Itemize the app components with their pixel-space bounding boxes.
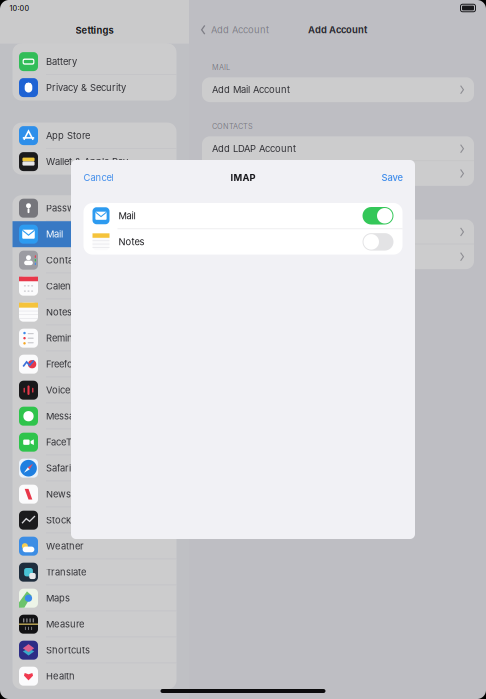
staticText: IMAP — [230, 172, 255, 183]
button[interactable]: Add Subscribed Calendar — [202, 244, 474, 269]
staticText: Measure — [46, 619, 84, 630]
button[interactable]: Privacy & Security — [12, 75, 176, 101]
staticText: Privacy & Security — [46, 82, 126, 93]
button[interactable]: Passwords — [12, 195, 176, 221]
button[interactable]: Battery — [12, 49, 176, 75]
staticText: Cancel — [83, 172, 113, 183]
staticText: Notes — [118, 236, 144, 247]
staticText: Mail — [46, 229, 63, 240]
button[interactable]: Mail — [83, 203, 402, 228]
button[interactable]: Calendar — [12, 273, 176, 299]
staticText: Health — [46, 671, 75, 682]
button[interactable]: Mail — [12, 221, 176, 247]
staticText: Safari — [46, 463, 71, 474]
button[interactable]: App Store — [12, 123, 176, 149]
staticText: Add Subscribed Calendar — [212, 251, 327, 262]
button[interactable]: Safari — [12, 455, 176, 481]
staticText: Maps — [46, 593, 70, 604]
button[interactable]: Add LDAP Account — [202, 136, 474, 161]
button[interactable]: Reminders — [12, 325, 176, 351]
button[interactable]: Add CardDAV Account — [202, 161, 474, 186]
staticText: Add CalDAV Account — [212, 226, 305, 238]
staticText: Weather — [46, 541, 84, 552]
staticText: App Store — [46, 130, 90, 141]
button[interactable]: Health — [12, 663, 176, 689]
button[interactable]: Voice Memos — [12, 377, 176, 403]
button[interactable]: Cancel — [71, 166, 126, 189]
button[interactable]: Notes — [83, 229, 402, 255]
staticText: Add Account — [211, 24, 269, 35]
staticText: Add Mail Account — [212, 84, 290, 95]
staticText: Voice Memos — [46, 385, 105, 396]
staticText: Save — [382, 172, 403, 183]
button[interactable]: Add Mail Account — [202, 77, 474, 102]
staticText: Freeform — [46, 359, 85, 370]
button[interactable]: Translate — [12, 559, 176, 585]
staticText: MAIL — [212, 63, 230, 72]
staticText: Notes — [46, 307, 72, 318]
button[interactable]: Save — [369, 166, 415, 189]
staticText: Mail — [118, 210, 135, 221]
staticText: Translate — [46, 567, 86, 578]
staticText: News — [46, 489, 71, 500]
staticText: Messages — [46, 411, 90, 422]
button[interactable]: Weather — [12, 533, 176, 559]
staticText: Shortcuts — [46, 645, 90, 656]
staticText: FaceTime — [46, 437, 87, 448]
staticText: Passwords — [46, 203, 94, 214]
staticText: Add LDAP Account — [212, 143, 296, 154]
staticText: Reminders — [46, 333, 93, 344]
button[interactable]: Shortcuts — [12, 637, 176, 663]
button[interactable]: Freeform — [12, 351, 176, 377]
button[interactable]: FaceTime — [12, 429, 176, 455]
button[interactable]: Measure — [12, 611, 176, 637]
staticText: Calendar — [46, 281, 86, 292]
staticText: Settings — [75, 25, 113, 36]
button[interactable]: Maps — [12, 585, 176, 611]
staticText: Add Account — [308, 24, 367, 35]
staticText: Wallet & Apple Pay — [46, 156, 128, 167]
button[interactable]: Notes — [12, 299, 176, 325]
staticText: Contacts — [46, 255, 86, 266]
button[interactable]: Add CalDAV Account — [202, 219, 474, 244]
button[interactable]: News — [12, 481, 176, 507]
staticText: Battery — [46, 56, 77, 67]
staticText: Stocks — [46, 515, 76, 526]
button[interactable]: Add Account — [189, 20, 269, 39]
staticText: Add CardDAV Account — [212, 168, 312, 179]
button[interactable]: Stocks — [12, 507, 176, 533]
button[interactable]: Contacts — [12, 247, 176, 273]
staticText: CONTACTS — [212, 122, 253, 131]
button[interactable]: Messages — [12, 403, 176, 429]
button[interactable]: Wallet & Apple Pay — [12, 149, 176, 175]
staticText: 10:00 — [9, 4, 29, 13]
